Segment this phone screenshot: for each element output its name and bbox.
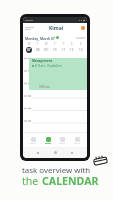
- button[interactable]: T: [34, 42, 42, 53]
- staticText: 12: [70, 48, 74, 52]
- staticText: 8:15 am - ClaudiaCom: [35, 64, 62, 68]
- staticText: W: [45, 42, 48, 46]
- button[interactable]: S: [77, 42, 85, 53]
- button[interactable]: S: [68, 42, 76, 53]
- button[interactable]: W: [42, 42, 50, 53]
- staticText: CALENDAR: [42, 174, 99, 188]
- staticText: 9:00 am: [39, 85, 50, 89]
- button[interactable]: More: [72, 136, 82, 145]
- staticText: task overview with: [22, 165, 91, 176]
- staticText: 13: [79, 48, 83, 52]
- button[interactable]: [56, 36, 59, 39]
- button[interactable]: T: [51, 42, 59, 53]
- staticText: the: [22, 174, 42, 188]
- staticText: F: [63, 42, 65, 46]
- staticText: M: [28, 42, 31, 46]
- button[interactable]: Profile: [81, 26, 85, 30]
- button[interactable]: Kimai: [23, 23, 87, 33]
- button[interactable]: Calendar: [43, 136, 53, 145]
- staticText: 10: [53, 48, 57, 52]
- button[interactable]: Home: [54, 151, 57, 154]
- button[interactable]: Tasks: [57, 136, 67, 145]
- button[interactable]: M: [25, 42, 33, 53]
- staticText: 08: [36, 48, 40, 52]
- staticText: S: [71, 42, 73, 46]
- button[interactable]: Timesheet: [28, 136, 38, 145]
- other: Calendar: [91, 154, 109, 167]
- staticText: 09: [44, 48, 48, 52]
- staticText: S: [80, 42, 82, 46]
- staticText: T: [54, 42, 56, 46]
- staticText: 07: [27, 48, 31, 52]
- staticText: Management: [32, 59, 53, 63]
- staticText: Kimai: [49, 25, 64, 32]
- staticText: 11: [62, 48, 66, 52]
- staticText: Monday, March 07: [25, 36, 55, 40]
- button[interactable]: F: [60, 42, 68, 53]
- button[interactable]: Management: [29, 58, 87, 90]
- staticText: T: [37, 42, 39, 46]
